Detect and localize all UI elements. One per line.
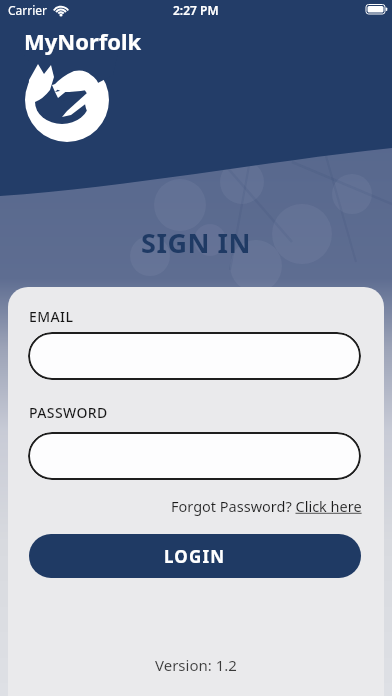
staticText: LOGIN [164, 545, 226, 568]
staticText: Version: 1.2 [155, 655, 237, 675]
button[interactable] [28, 432, 361, 480]
staticText: MyNorfolk [24, 26, 142, 56]
staticText: EMAIL [29, 307, 74, 326]
staticText: Carrier [8, 2, 48, 18]
button[interactable]: Forgot Password? Click here [171, 496, 362, 516]
staticText: 2:27 PM [173, 2, 219, 18]
button[interactable]: LOGIN [29, 534, 361, 578]
staticText: SIGN IN [141, 224, 251, 261]
button[interactable] [28, 332, 361, 380]
staticText: PASSWORD [29, 403, 108, 422]
